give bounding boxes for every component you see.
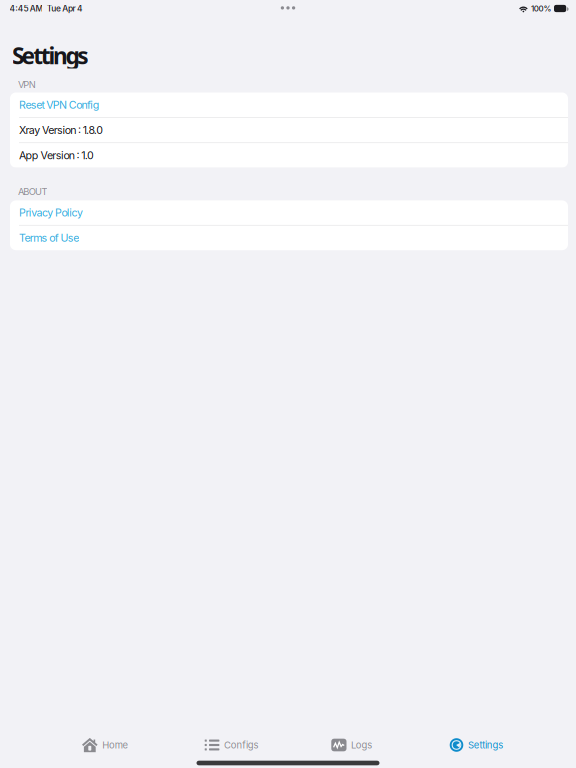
button[interactable]: Reset VPN Config: [10, 92, 568, 117]
staticText: ABOUT: [18, 186, 47, 197]
staticText: Terms of Use: [19, 232, 79, 244]
button[interactable]: Configs: [205, 734, 331, 756]
staticText: 4:45 AM: [9, 3, 43, 13]
button[interactable]: Terms of Use: [10, 226, 568, 250]
staticText: Home: [102, 739, 128, 751]
staticText: Settings: [12, 40, 88, 70]
staticText: Privacy Policy: [19, 206, 83, 219]
staticText: VPN: [18, 79, 36, 90]
staticText: Settings: [468, 739, 503, 751]
staticText: 100%: [531, 4, 551, 13]
staticText: Reset VPN Config: [19, 98, 100, 111]
staticText: Tue Apr 4: [43, 3, 83, 13]
staticText: Logs: [351, 739, 372, 751]
staticText: App Version : 1.0: [19, 149, 94, 162]
staticText: Xray Version : 1.8.0: [19, 124, 103, 136]
button[interactable]: Logs: [331, 734, 450, 756]
button[interactable]: Home: [82, 734, 205, 756]
staticText: Configs: [224, 739, 258, 751]
button[interactable]: Privacy Policy: [10, 200, 568, 225]
button[interactable]: Settings: [450, 734, 550, 756]
